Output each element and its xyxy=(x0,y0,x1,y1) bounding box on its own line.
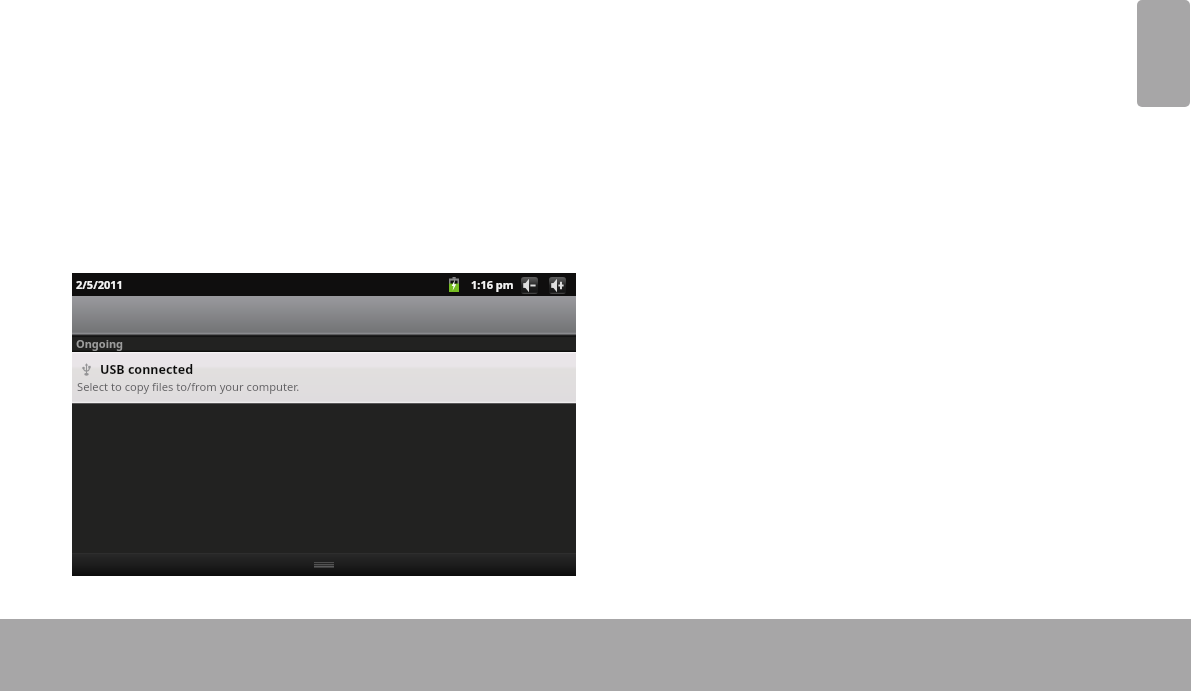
staticText: Ongoing xyxy=(76,336,124,351)
other: Battery charging xyxy=(449,277,459,292)
staticText: Select to copy files to/from your comput… xyxy=(77,379,300,394)
button[interactable]: Volume up xyxy=(549,277,566,294)
button[interactable]: Volume down xyxy=(521,277,538,294)
staticText: 1:16 pm xyxy=(471,277,514,292)
staticText: USB connected xyxy=(100,361,194,378)
button[interactable]: USB connected xyxy=(72,352,576,404)
staticText: 2/5/2011 xyxy=(76,277,123,292)
button[interactable]: Close notification shade xyxy=(72,553,576,576)
